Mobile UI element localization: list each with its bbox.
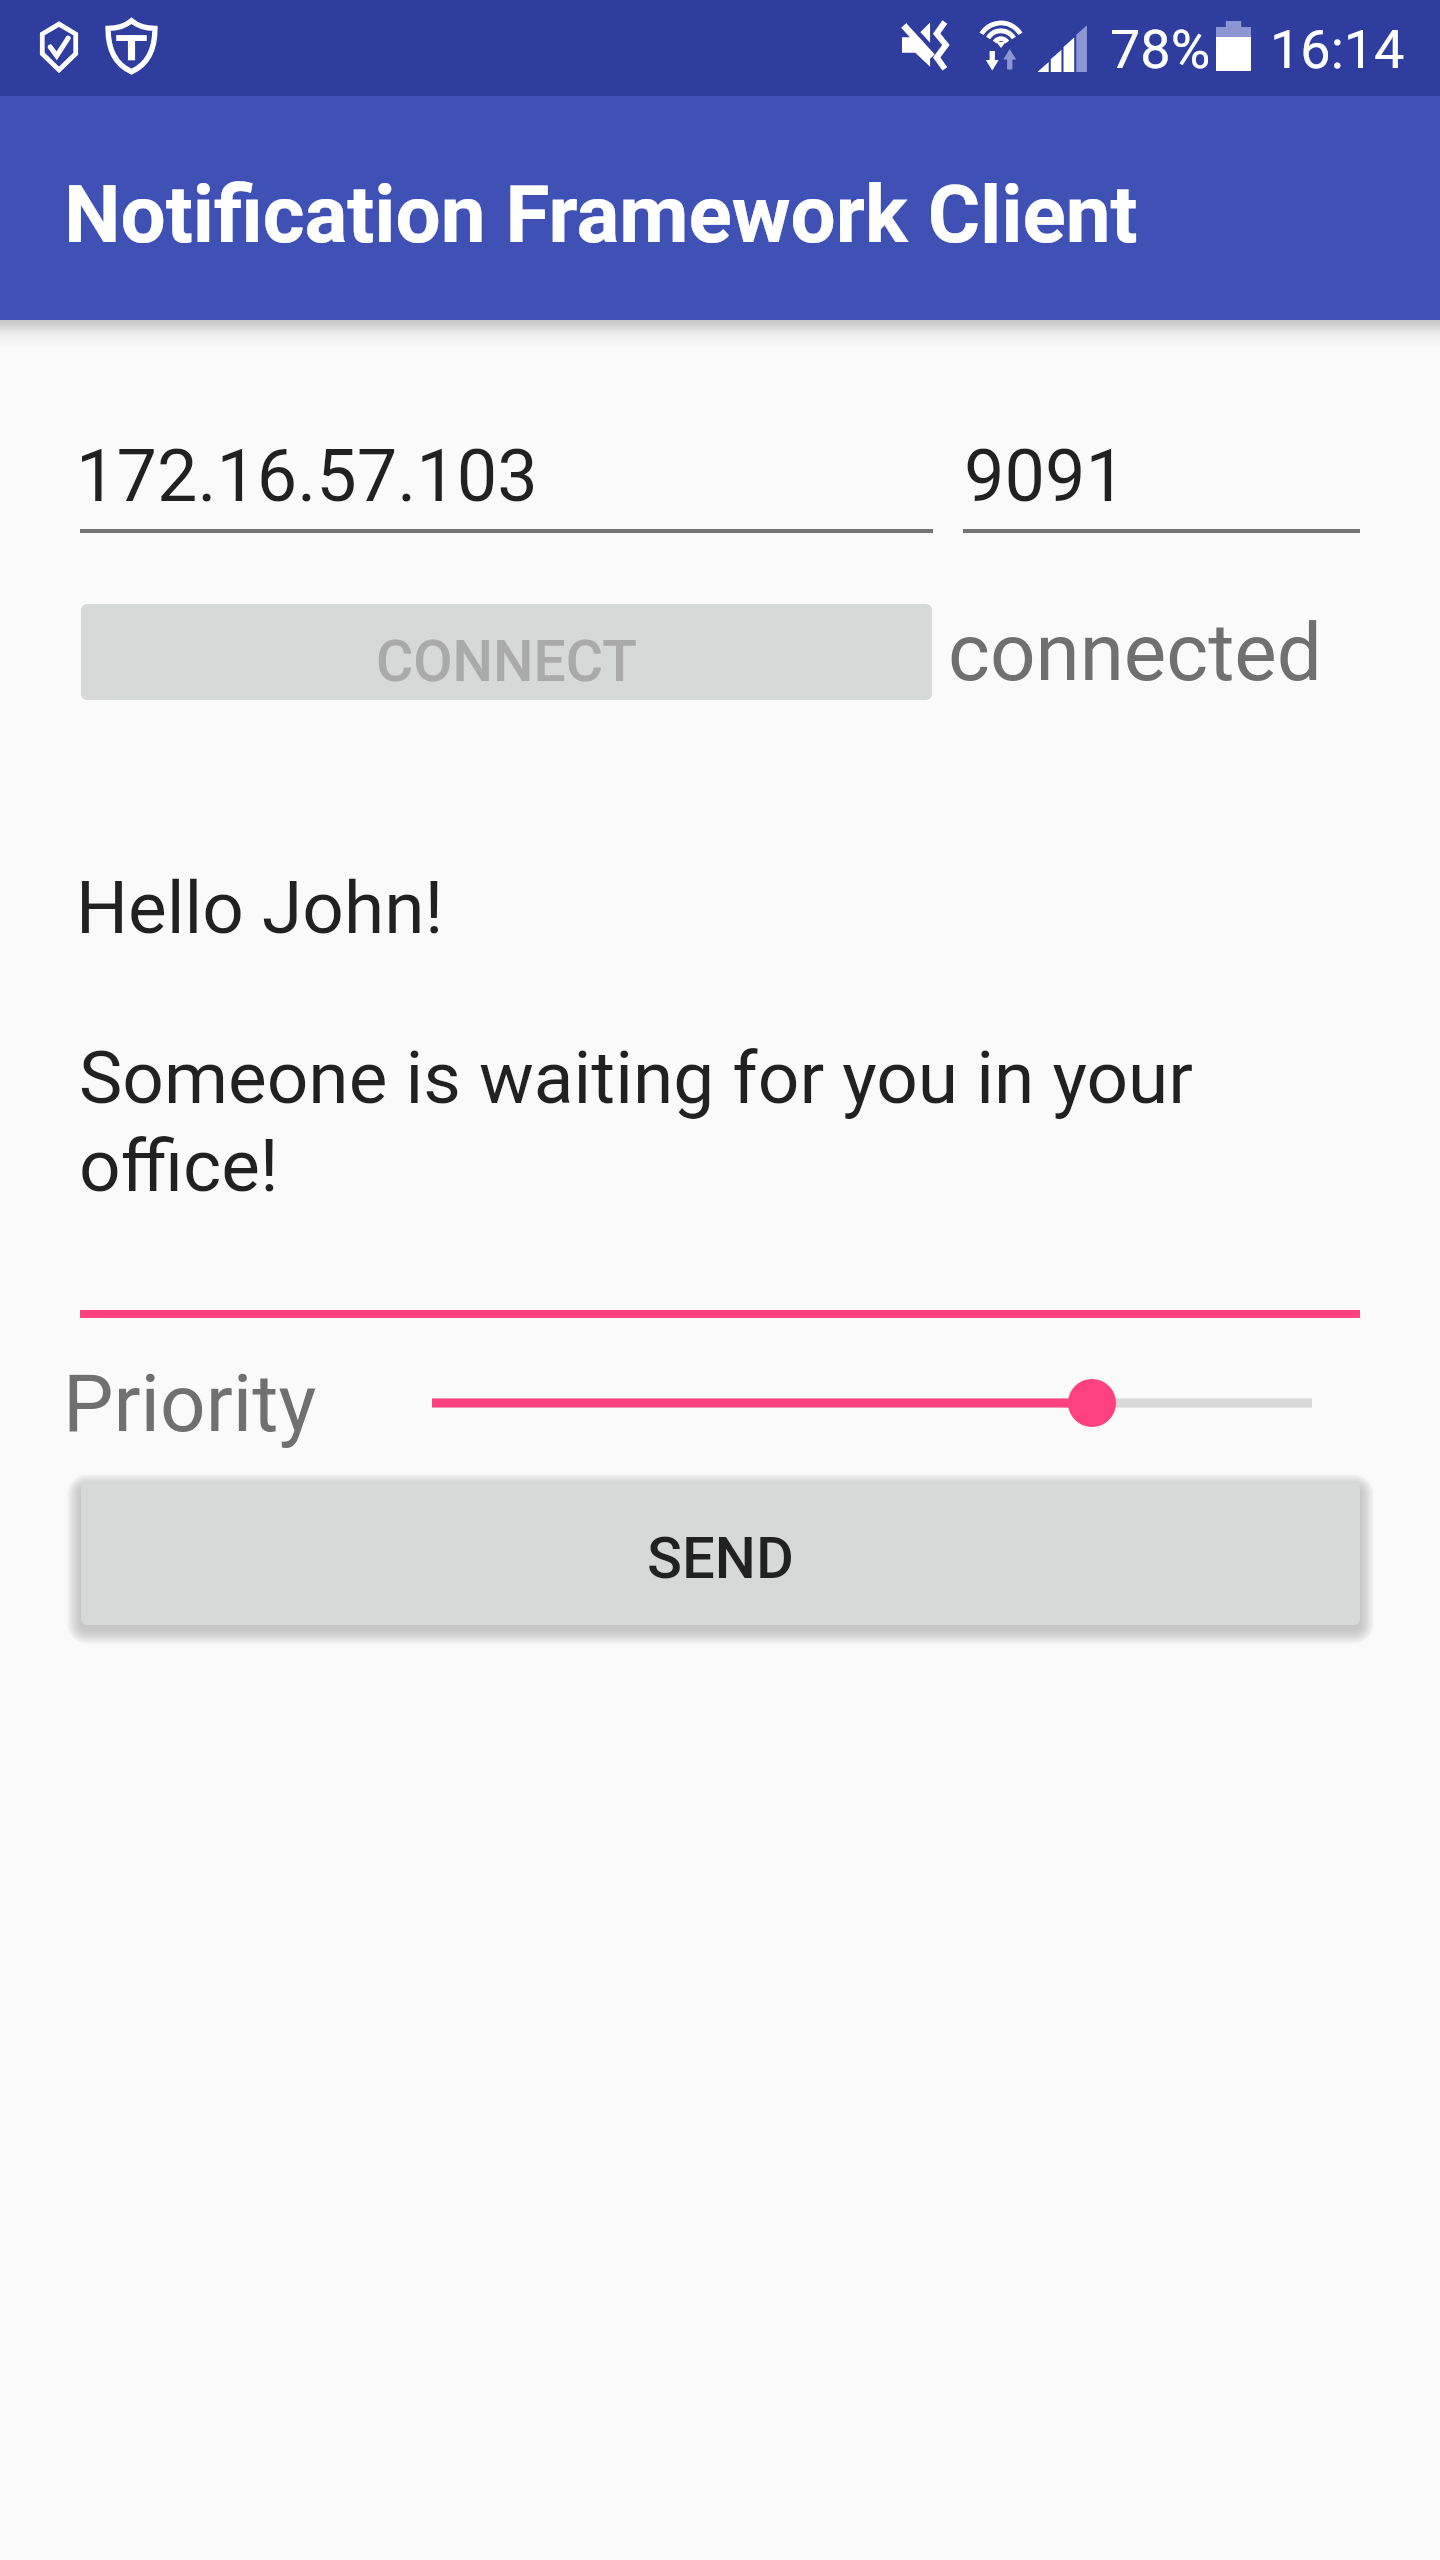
- staticText: 9091: [964, 434, 1126, 518]
- staticText: 172.16.57.103: [76, 434, 538, 518]
- staticText: Priority: [63, 1357, 317, 1451]
- button[interactable]: Priority slider: [412, 1363, 1332, 1443]
- button[interactable]: CONNECT: [81, 604, 932, 700]
- staticText: connected: [948, 606, 1322, 700]
- staticText: SEND: [647, 1524, 794, 1592]
- staticText: Notification Framework Client: [64, 168, 1138, 262]
- staticText: Someone is waiting for you in your offic…: [79, 1035, 1289, 1208]
- staticText: 78%: [1110, 18, 1211, 81]
- staticText: 16:14: [1270, 18, 1405, 81]
- staticText: Hello John!: [76, 865, 444, 951]
- staticText: CONNECT: [376, 628, 637, 695]
- button[interactable]: SEND: [81, 1483, 1360, 1625]
